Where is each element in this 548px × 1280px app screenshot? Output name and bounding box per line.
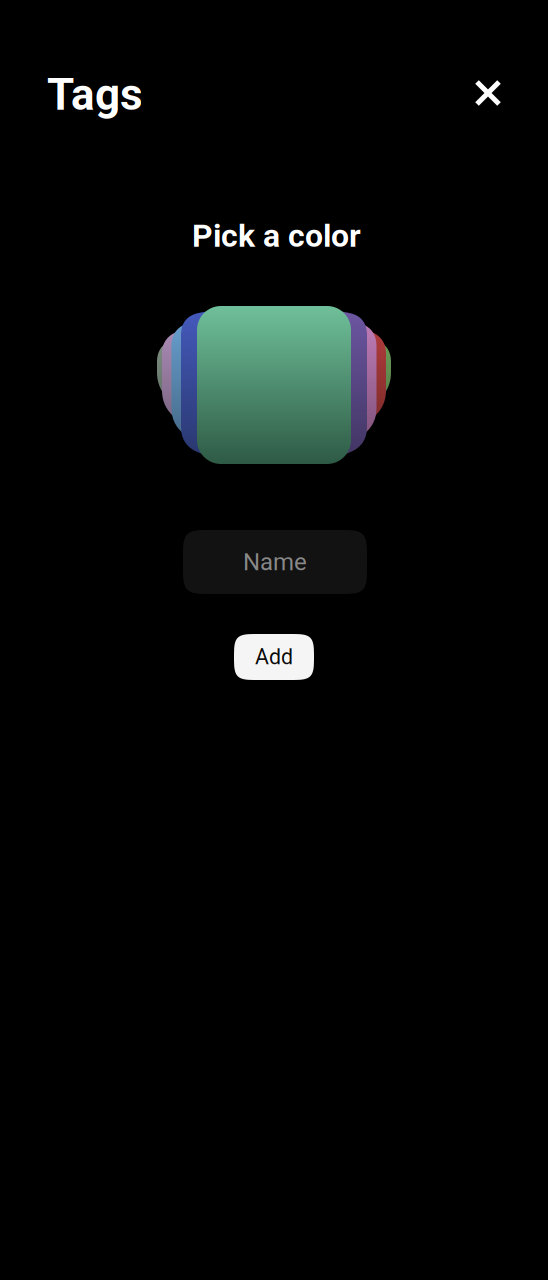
staticText: Name: [243, 548, 307, 576]
button[interactable]: Close: [466, 71, 510, 115]
staticText: Add: [255, 644, 293, 669]
button[interactable]: Add: [234, 634, 314, 680]
staticText: Tags: [47, 69, 143, 121]
staticText: Pick a color: [192, 217, 361, 254]
